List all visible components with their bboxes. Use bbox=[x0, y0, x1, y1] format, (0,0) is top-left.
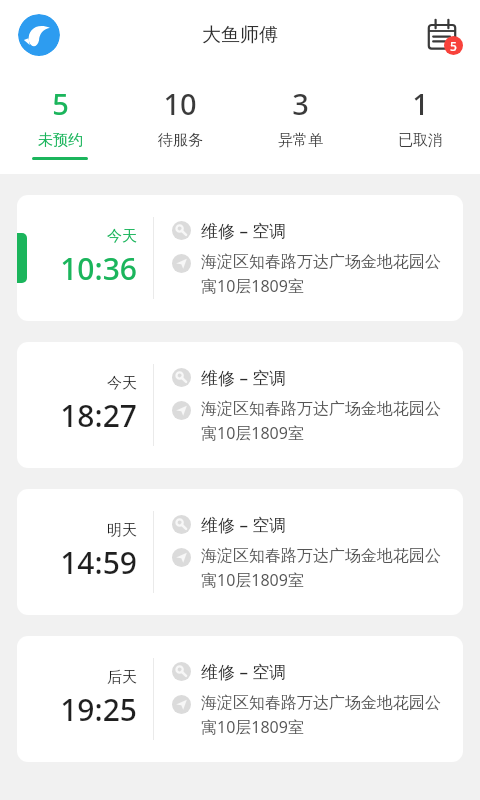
button[interactable]: 后天 bbox=[17, 636, 463, 762]
staticText: 海淀区知春路万达广场金地花园公寓10层1809室 bbox=[201, 399, 451, 444]
staticText: 19:25 bbox=[60, 689, 137, 730]
staticText: 已取消 bbox=[398, 131, 443, 150]
staticText: 后天 bbox=[107, 668, 137, 687]
staticText: 维修 – 空调 bbox=[201, 219, 287, 242]
button[interactable]: 明天 bbox=[17, 489, 463, 615]
button[interactable]: 1 bbox=[360, 70, 480, 174]
button[interactable]: 今天 bbox=[17, 195, 463, 321]
staticText: 14:59 bbox=[60, 542, 137, 583]
staticText: 今天 bbox=[107, 227, 137, 246]
staticText: 1 bbox=[412, 84, 429, 123]
button[interactable]: 5 bbox=[0, 70, 120, 174]
staticText: 5 bbox=[52, 84, 69, 123]
staticText: 5 bbox=[450, 38, 457, 54]
staticText: 异常单 bbox=[278, 131, 323, 150]
staticText: 海淀区知春路万达广场金地花园公寓10层1809室 bbox=[201, 693, 451, 738]
staticText: 海淀区知春路万达广场金地花园公寓10层1809室 bbox=[201, 546, 451, 591]
staticText: 10:36 bbox=[60, 248, 137, 289]
staticText: 10 bbox=[163, 84, 197, 123]
button[interactable]: 今天 bbox=[17, 342, 463, 468]
staticText: 3 bbox=[292, 84, 309, 123]
staticText: 维修 – 空调 bbox=[201, 660, 287, 683]
staticText: 明天 bbox=[107, 521, 137, 540]
button[interactable]: 订单日历 bbox=[420, 13, 464, 57]
staticText: 维修 – 空调 bbox=[201, 366, 287, 389]
staticText: 海淀区知春路万达广场金地花园公寓10层1809室 bbox=[201, 252, 451, 297]
staticText: 今天 bbox=[107, 374, 137, 393]
button[interactable]: 应用图标 bbox=[18, 14, 60, 56]
staticText: 待服务 bbox=[158, 131, 203, 150]
staticText: 维修 – 空调 bbox=[201, 513, 287, 536]
staticText: 18:27 bbox=[60, 395, 137, 436]
button[interactable]: 10 bbox=[120, 70, 240, 174]
staticText: 未预约 bbox=[38, 131, 83, 150]
button[interactable]: 3 bbox=[240, 70, 360, 174]
staticText: 大鱼师傅 bbox=[202, 23, 278, 47]
